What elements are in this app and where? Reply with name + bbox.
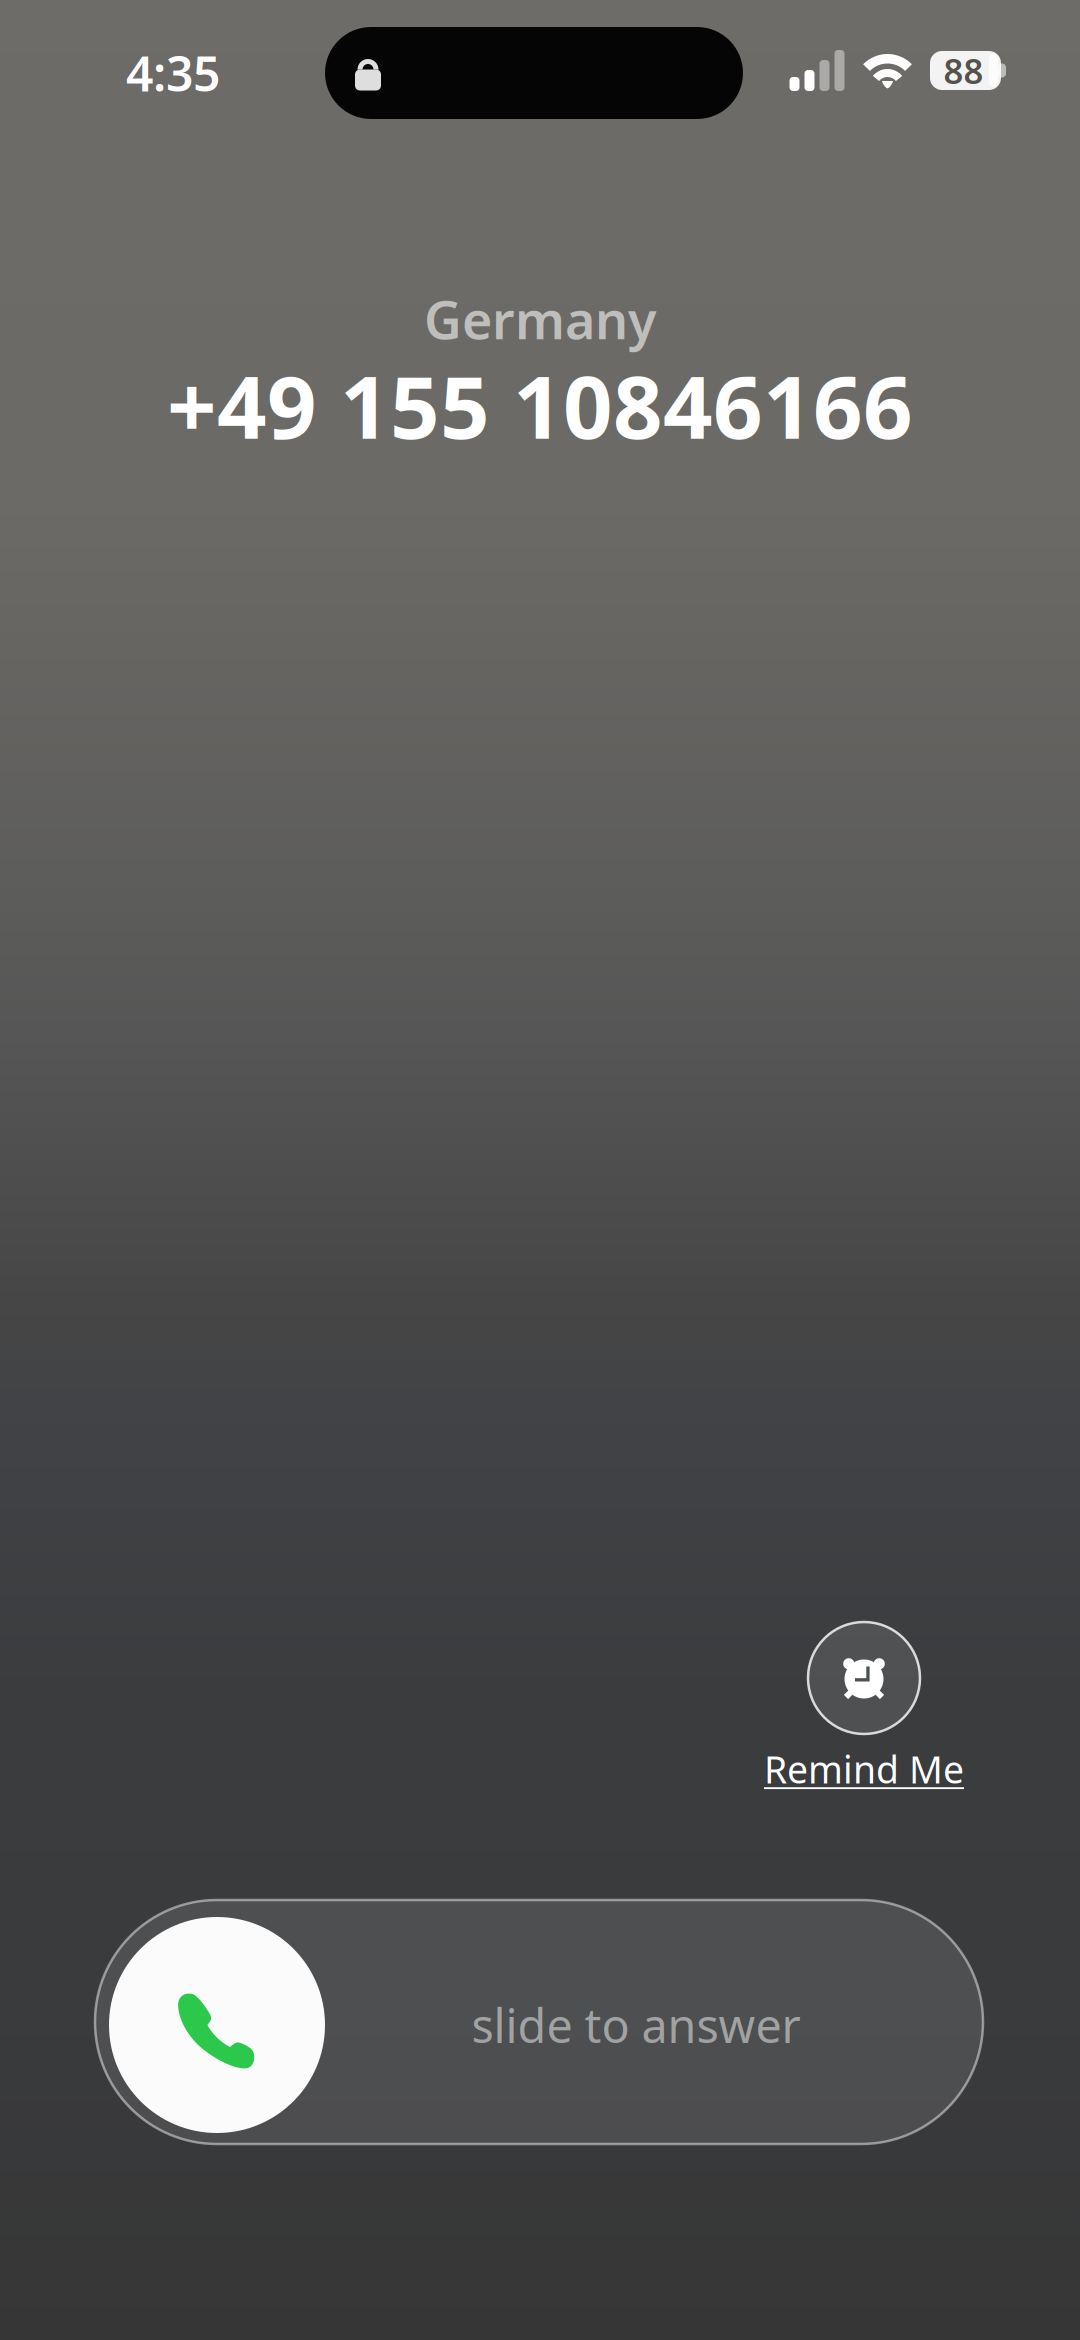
button[interactable]: Remind Me: [714, 1613, 1014, 1798]
staticText: slide to answer: [471, 1994, 800, 2056]
button[interactable]: slide to answer: [95, 1900, 983, 2144]
staticText: 4:35: [126, 41, 220, 105]
staticText: 88: [943, 47, 983, 93]
staticText: Germany: [424, 284, 656, 354]
staticText: Remind Me: [764, 1744, 964, 1794]
staticText: +49 155 10846166: [167, 347, 913, 463]
